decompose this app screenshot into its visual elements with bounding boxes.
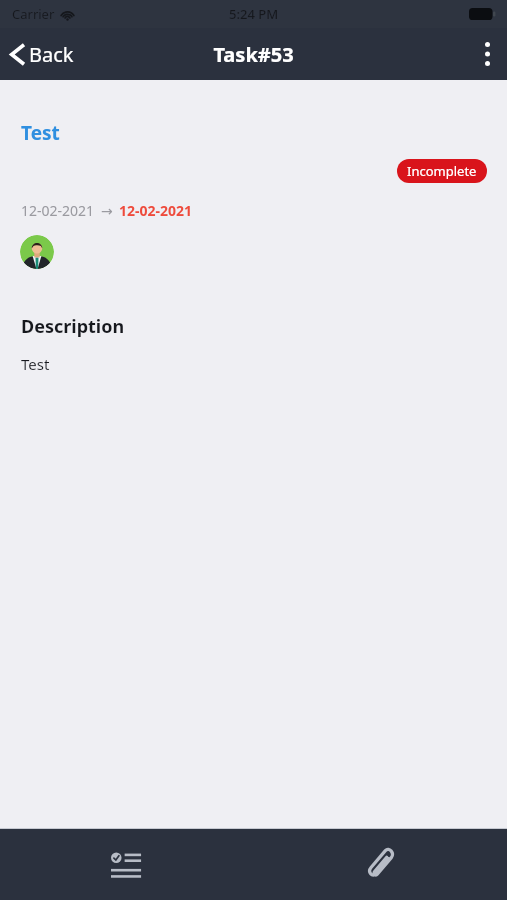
staticText: 5:24 PM <box>229 5 279 23</box>
button[interactable]: Assignee avatar <box>20 235 54 269</box>
button[interactable]: Checklist <box>95 836 158 894</box>
button[interactable]: Attachments <box>351 833 410 897</box>
staticText: Task#53 <box>213 41 294 68</box>
button[interactable]: Back <box>0 33 90 76</box>
button[interactable]: Incomplete <box>397 159 487 183</box>
staticText: Description <box>21 314 125 339</box>
staticText: Back <box>29 41 74 68</box>
staticText: → <box>101 203 113 219</box>
staticText: 12-02-2021 <box>21 201 95 220</box>
staticText: Incomplete <box>407 162 477 180</box>
button[interactable]: More options <box>468 30 507 78</box>
staticText: Carrier <box>12 5 55 23</box>
staticText: Test <box>21 120 60 146</box>
staticText: Test <box>21 354 50 374</box>
staticText: 12-02-2021 <box>119 201 193 220</box>
